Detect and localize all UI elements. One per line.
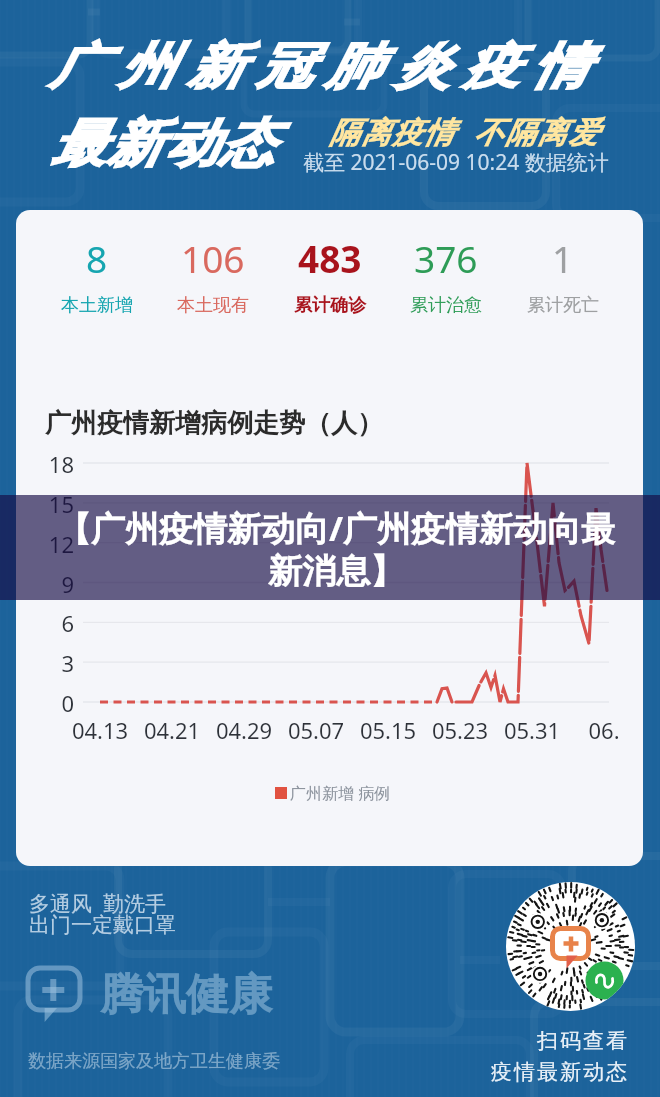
staticText: 隔离疫情 不隔离爱 (329, 111, 600, 152)
staticText: 【广州疫情新动向/广州疫情新动向最新消息】 (44, 505, 628, 593)
staticText: 广州新冠肺炎疫情 (43, 36, 594, 98)
staticText: 累计治愈 (410, 294, 482, 317)
staticText: 12 (40, 529, 74, 559)
staticText: 数据来源国家及地方卫生健康委 (28, 1050, 280, 1073)
staticText: 376 (414, 233, 478, 283)
button[interactable]: 483 (294, 233, 366, 317)
staticText: 广州新增 病例 (290, 782, 391, 804)
staticText: 扫码查看 (425, 1028, 629, 1054)
staticText: 最新动态 (50, 112, 275, 176)
staticText: 腾讯健康 (100, 968, 272, 1022)
staticText: 3 (40, 648, 74, 678)
staticText: 0 (40, 688, 74, 718)
staticText: 04.29 (208, 715, 280, 745)
button[interactable]: 1 (527, 233, 599, 317)
button[interactable]: 106 (177, 233, 249, 317)
staticText: 483 (298, 233, 362, 283)
button[interactable]: 376 (410, 233, 482, 317)
staticText: 05.07 (280, 715, 352, 745)
staticText: 05.31 (496, 715, 568, 745)
staticText: 6 (40, 608, 74, 638)
staticText: 1 (552, 233, 574, 283)
staticText: 累计死亡 (527, 294, 599, 317)
staticText: 截至 2021-06-09 10:24 数据统计 (303, 148, 609, 177)
staticText: 多通风 勤洗手 (29, 889, 166, 918)
staticText: 05.23 (424, 715, 496, 745)
staticText: 广州疫情新增病例走势（人） (45, 407, 383, 440)
button[interactable]: 扫码查看疫情最新动态 (506, 882, 635, 1011)
staticText: 累计确诊 (294, 294, 366, 317)
staticText: 04.21 (136, 715, 208, 745)
button[interactable]: 8 (61, 233, 133, 317)
button[interactable]: 【广州疫情新动向/广州疫情新动向最新消息】 (0, 495, 660, 600)
staticText: 9 (40, 569, 74, 599)
staticText: 8 (86, 233, 108, 283)
staticText: 04.13 (64, 715, 136, 745)
staticText: 106 (181, 233, 245, 283)
staticText: 05.15 (352, 715, 424, 745)
staticText: 疫情最新动态 (425, 1059, 629, 1085)
staticText: 15 (40, 489, 74, 519)
staticText: 18 (40, 449, 74, 479)
staticText: 本土现有 (177, 294, 249, 317)
staticText: 06. (568, 715, 640, 745)
staticText: 本土新增 (61, 294, 133, 317)
staticText: 出门一定戴口罩 (29, 912, 176, 938)
